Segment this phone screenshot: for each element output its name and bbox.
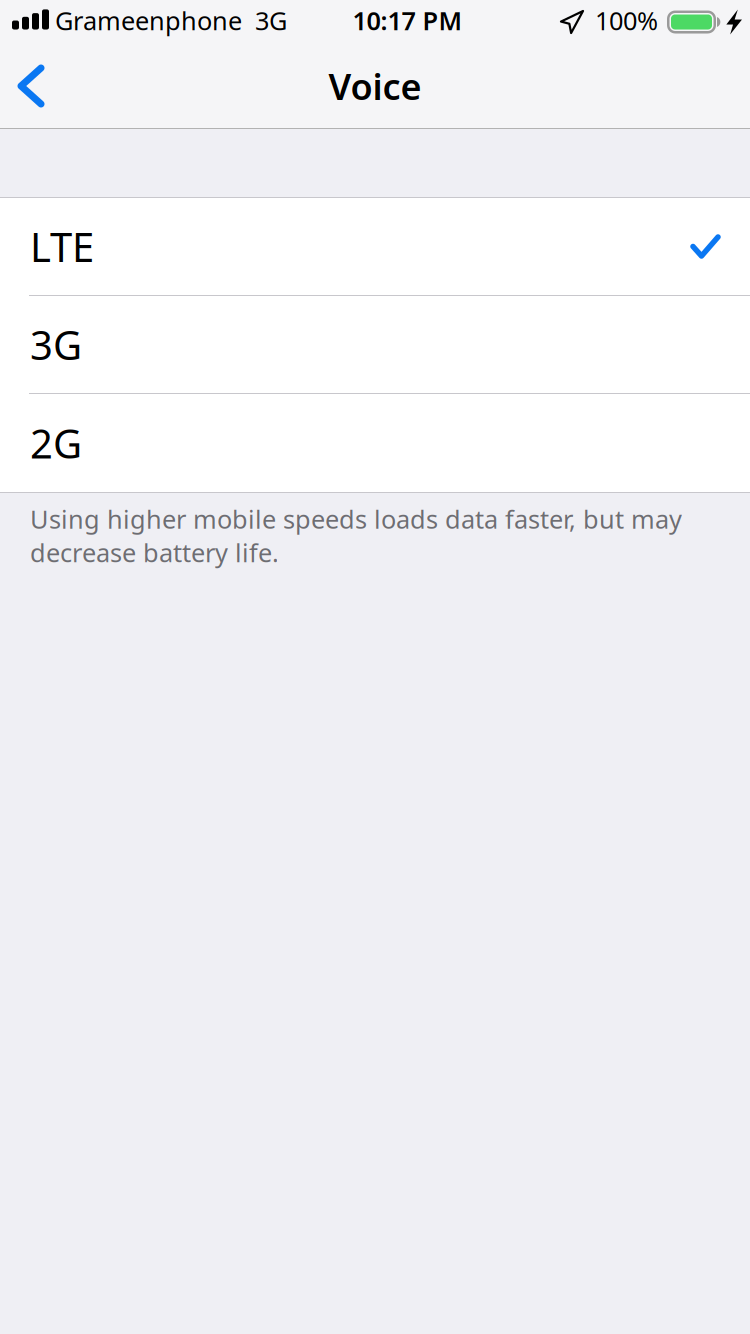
button[interactable]: Back (0, 44, 69, 128)
staticText: Using higher mobile speeds loads data fa… (30, 502, 682, 569)
button[interactable]: LTE (0, 198, 750, 296)
button[interactable]: 3G (0, 296, 750, 394)
staticText: Voice (328, 62, 421, 110)
staticText: Grameenphone (55, 4, 242, 37)
staticText: 3G (255, 4, 287, 37)
staticText: 100% (595, 4, 658, 37)
button[interactable]: 2G (0, 394, 750, 492)
staticText: 10:17 PM (352, 4, 462, 37)
staticText: 2G (30, 416, 82, 469)
staticText: LTE (30, 220, 94, 273)
staticText: 3G (30, 318, 82, 371)
